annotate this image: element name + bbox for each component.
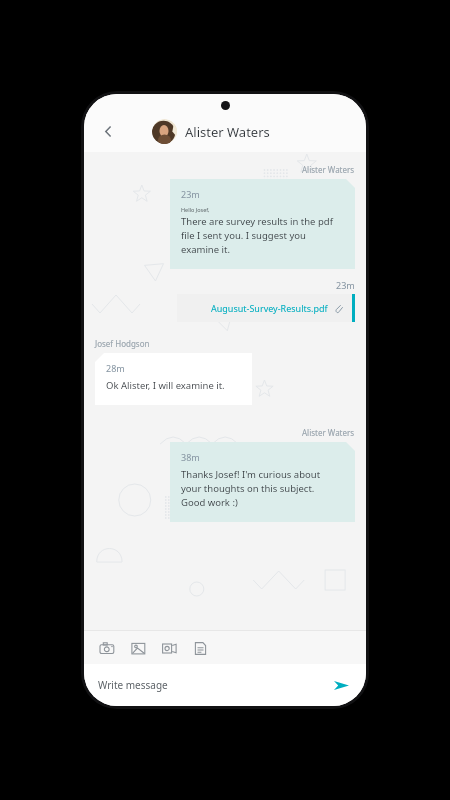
button[interactable]: Send [330, 674, 352, 696]
button[interactable]: Camera [97, 638, 117, 658]
staticText: Write message [98, 678, 168, 692]
staticText: Augusut-Survey-Results.pdf [211, 302, 328, 314]
button[interactable]: Back [92, 115, 124, 147]
staticText: 38m [181, 451, 200, 463]
button[interactable]: Alister Waters [152, 116, 270, 147]
staticText: Alister Waters [185, 123, 270, 141]
button[interactable]: 28m [95, 353, 252, 405]
staticText: There are survey results in the pdf file… [181, 215, 333, 256]
staticText: 23m [181, 188, 200, 200]
staticText: 23m [336, 279, 355, 291]
button[interactable]: Video [159, 638, 179, 658]
button[interactable]: Document [190, 638, 210, 658]
button[interactable]: 38m [170, 442, 355, 522]
staticText: Hello Josef, [181, 206, 210, 213]
staticText: Josef Hodgson [95, 338, 150, 349]
staticText: Ok Alister, I will examine it. [106, 379, 225, 392]
button[interactable]: Augusut-Survey-Results.pdf [177, 294, 355, 322]
button[interactable]: 23m [170, 179, 355, 269]
button[interactable]: Write message [84, 664, 366, 706]
button[interactable]: Gallery [128, 638, 148, 658]
staticText: Alister Waters [302, 427, 355, 438]
staticText: Alister Waters [302, 164, 355, 175]
staticText: Thanks Josef! I'm curious about your tho… [181, 468, 321, 509]
staticText: 28m [106, 362, 125, 374]
